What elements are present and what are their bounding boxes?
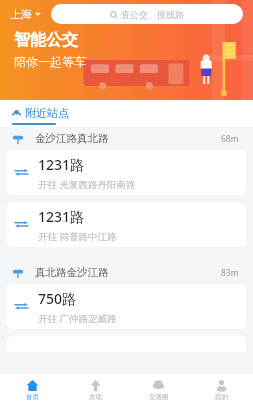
staticText: 1231路 <box>38 207 85 226</box>
button[interactable]: 上海 <box>6 4 45 24</box>
staticText: 1231路 <box>38 155 85 174</box>
staticText: 交通圈 <box>149 393 169 401</box>
staticText: 智能公交 <box>14 30 78 50</box>
staticText: 真北路金沙江路 <box>35 266 109 279</box>
staticText: 我的 <box>215 393 228 401</box>
staticText: 68m <box>221 133 239 145</box>
button[interactable]: 我的 <box>190 374 253 405</box>
staticText: 首页 <box>26 393 39 401</box>
staticText: 83m <box>221 267 239 279</box>
staticText: 陪你一起等车 <box>14 54 86 69</box>
staticText: 发现 <box>89 393 102 401</box>
staticText: 上海 <box>10 7 32 21</box>
staticText: 金沙江路真北路 <box>35 132 109 145</box>
staticText: 开往 同普路中江路 <box>38 230 117 243</box>
button[interactable]: 查公交、搜线路 <box>51 4 243 24</box>
button[interactable]: 真北路金沙江路 <box>0 261 253 284</box>
button[interactable]: 1231路 <box>7 202 246 247</box>
button[interactable]: 首页 <box>0 374 64 405</box>
staticText: 开往 光复西路丹阳南路 <box>38 178 136 191</box>
staticText: 750路 <box>38 289 77 308</box>
button[interactable]: 交通圈 <box>127 374 190 405</box>
button[interactable]: 1231路 <box>7 150 246 195</box>
button[interactable]: 750路 <box>7 284 246 329</box>
button[interactable]: 金沙江路真北路 <box>0 127 253 150</box>
button[interactable]: 附近站点 <box>0 100 81 123</box>
button[interactable]: 发现 <box>64 374 127 405</box>
staticText: 开往 广仲路定威路 <box>38 312 117 325</box>
staticText: 查公交、搜线路 <box>121 9 184 20</box>
staticText: 附近站点 <box>25 106 69 120</box>
